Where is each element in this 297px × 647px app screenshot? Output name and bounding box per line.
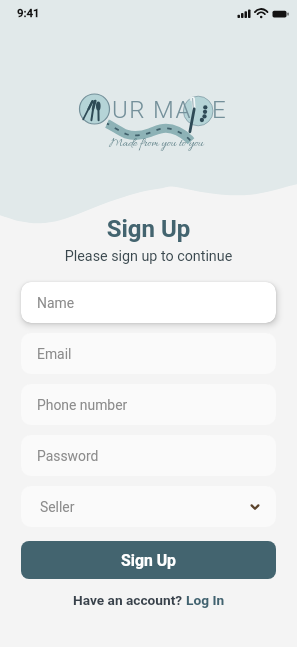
staticText: Please sign up to continue: [0, 248, 297, 265]
staticText: E: [212, 96, 226, 124]
button[interactable]: Email: [21, 333, 276, 374]
staticText: Phone number: [37, 397, 128, 413]
staticText: 9:41: [17, 6, 40, 19]
button[interactable]: Password: [21, 435, 276, 476]
staticText: Sign Up: [0, 215, 297, 243]
staticText: Log In: [186, 592, 225, 608]
staticText: Sign Up: [121, 551, 176, 570]
staticText: Made from you to you: [109, 136, 204, 152]
staticText: UR MA: [112, 96, 192, 124]
staticText: Password: [37, 448, 99, 464]
button[interactable]: Log In: [186, 592, 225, 608]
button[interactable]: Seller: [21, 486, 276, 527]
button[interactable]: Sign Up: [21, 541, 276, 579]
staticText: Email: [37, 346, 72, 362]
staticText: Seller: [40, 499, 75, 515]
button[interactable]: Name: [21, 282, 276, 323]
staticText: Have an account?: [73, 592, 186, 608]
other: Expand account type: [248, 500, 262, 514]
button[interactable]: Phone number: [21, 384, 276, 425]
staticText: Name: [37, 295, 75, 311]
